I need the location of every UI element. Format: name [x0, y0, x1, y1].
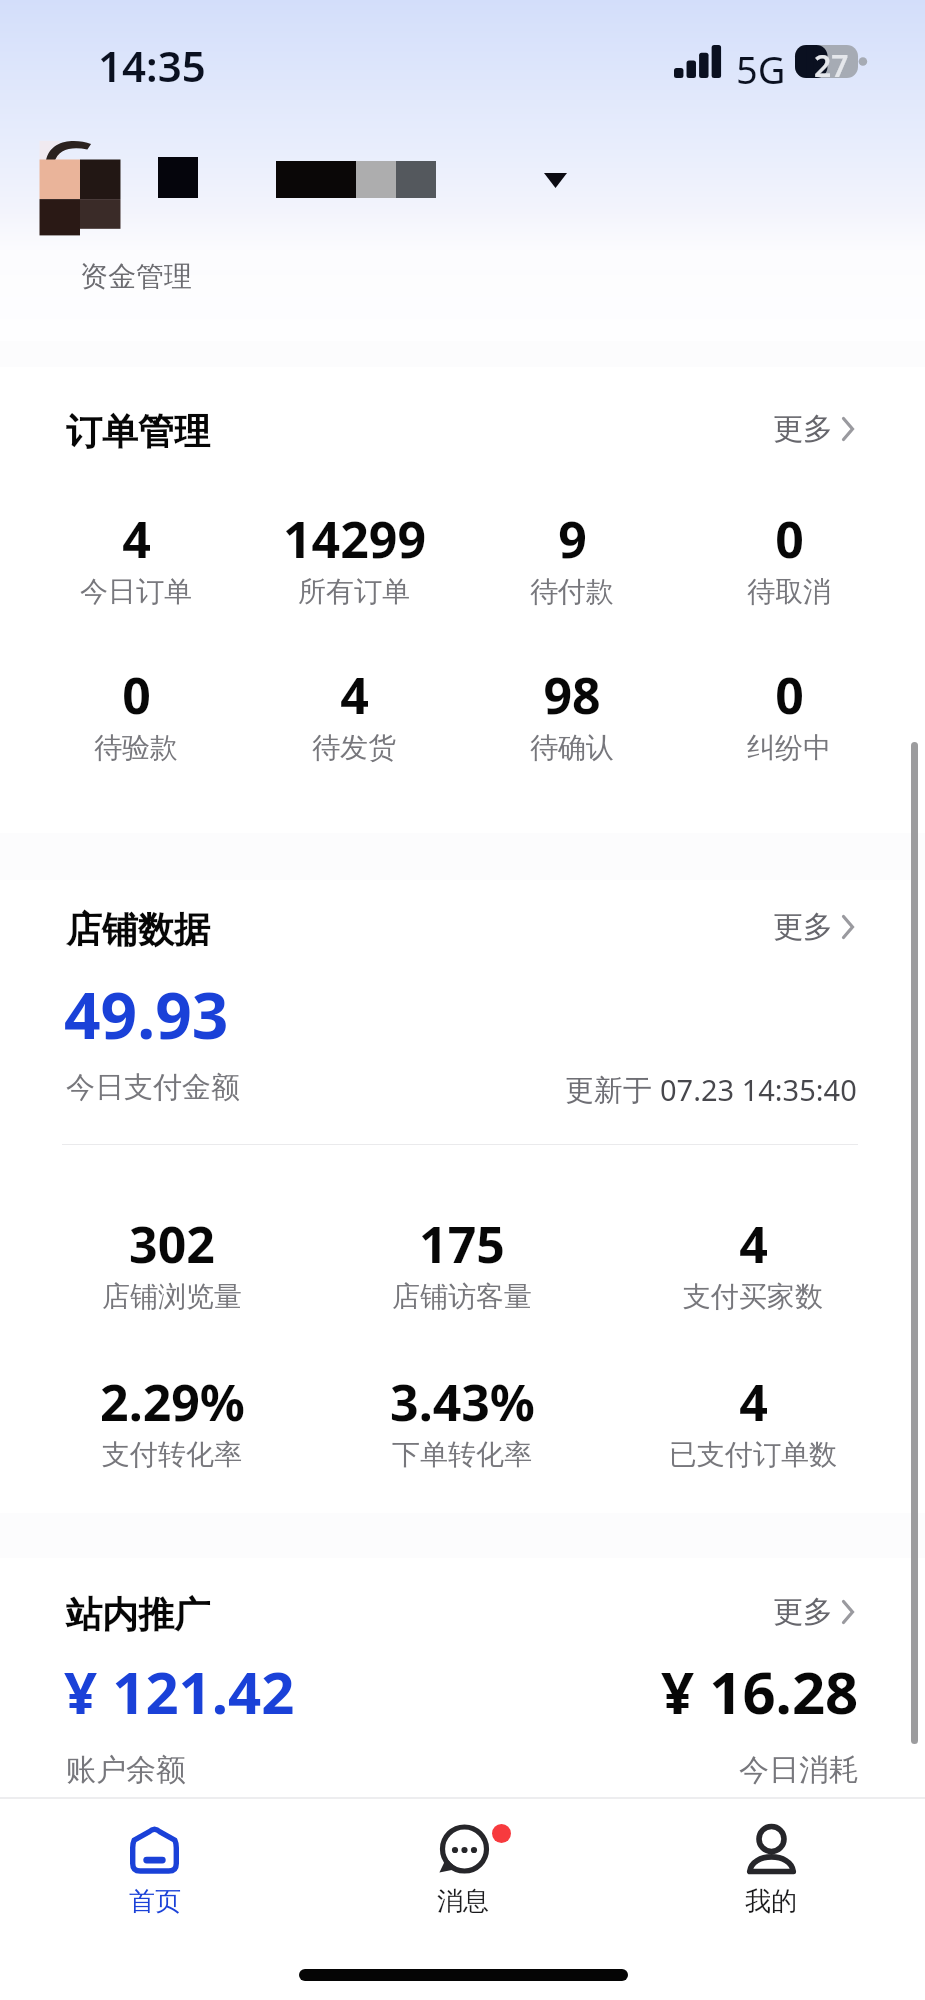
staticText: 49.93	[64, 971, 229, 1058]
button[interactable]: Home	[0, 1799, 309, 1918]
button[interactable]: 4	[245, 661, 463, 765]
staticText: 待取消	[747, 574, 831, 609]
button[interactable]: 更多	[761, 897, 864, 957]
staticText: 5G	[736, 43, 786, 95]
staticText: 已支付订单数	[669, 1437, 837, 1472]
staticText: 待付款	[530, 574, 614, 609]
staticText: 更多	[773, 410, 833, 448]
button[interactable]: 2.29%	[27, 1368, 317, 1472]
staticText: 站内推广	[66, 1592, 210, 1637]
staticText: 4	[122, 505, 151, 573]
staticText: 账户余额	[66, 1751, 186, 1789]
staticText: 支付转化率	[102, 1437, 242, 1472]
staticText: 14:35	[98, 37, 206, 94]
button[interactable]: 175	[317, 1210, 607, 1314]
button[interactable]: ¥ 121.42	[64, 1652, 295, 1731]
staticText: 所有订单	[298, 574, 410, 609]
button[interactable]: 0	[680, 661, 898, 765]
staticText: 175	[419, 1210, 505, 1278]
staticText: 14299	[283, 505, 426, 573]
staticText: 店铺访客量	[392, 1279, 532, 1314]
staticText: 更多	[773, 1593, 833, 1631]
staticText: 纠纷中	[747, 730, 831, 765]
staticText: 更多	[773, 908, 833, 946]
staticText: 0	[775, 661, 804, 729]
button[interactable]: 3.43%	[317, 1368, 607, 1472]
staticText: 今日订单	[80, 574, 192, 609]
staticText: 3.43%	[390, 1368, 535, 1436]
staticText: ¥ 16.28	[661, 1652, 859, 1731]
button[interactable]: 4	[608, 1368, 898, 1472]
button[interactable]: Shop avatar	[34, 132, 126, 242]
staticText: 更新于	[565, 1069, 660, 1109]
staticText: 待发货	[312, 730, 396, 765]
staticText: 2.29%	[100, 1368, 245, 1436]
staticText: 0	[122, 661, 151, 729]
button[interactable]: 资金管理	[80, 259, 192, 294]
button[interactable]: Messages	[309, 1799, 617, 1918]
staticText: 订单管理	[66, 409, 210, 454]
staticText: 27	[814, 45, 849, 86]
button[interactable]: 0	[27, 661, 245, 765]
staticText: 我的	[745, 1885, 797, 1918]
staticText: 4	[739, 1368, 768, 1436]
staticText: 店铺数据	[66, 907, 210, 952]
staticText: 0	[775, 505, 804, 573]
staticText: 下单转化率	[392, 1437, 532, 1472]
staticText: 消息	[437, 1885, 489, 1918]
staticText: 9	[558, 505, 587, 573]
button[interactable]: 4	[608, 1210, 898, 1314]
button[interactable]: 302	[27, 1210, 317, 1314]
button[interactable]: 98	[463, 661, 681, 765]
staticText: 待确认	[530, 730, 614, 765]
button[interactable]: 更多	[761, 399, 864, 459]
button[interactable]: Profile	[617, 1799, 925, 1918]
staticText: 4	[340, 661, 369, 729]
button[interactable]: 14299	[245, 505, 463, 609]
button[interactable]: 4	[27, 505, 245, 609]
staticText: 07.23 14:35:40	[660, 1070, 857, 1109]
staticText: 支付买家数	[683, 1279, 823, 1314]
button[interactable]: 0	[680, 505, 898, 609]
staticText: 98	[543, 661, 601, 729]
button[interactable]: Switch shop	[533, 160, 577, 200]
staticText: 待验款	[94, 730, 178, 765]
staticText: 302	[129, 1210, 215, 1278]
staticText: 今日消耗	[739, 1751, 859, 1789]
staticText: 店铺浏览量	[102, 1279, 242, 1314]
button[interactable]: 更多	[761, 1582, 864, 1642]
button[interactable]: 9	[463, 505, 681, 609]
staticText: 首页	[129, 1885, 181, 1918]
staticText: 今日支付金额	[66, 1069, 240, 1106]
staticText: 4	[739, 1210, 768, 1278]
